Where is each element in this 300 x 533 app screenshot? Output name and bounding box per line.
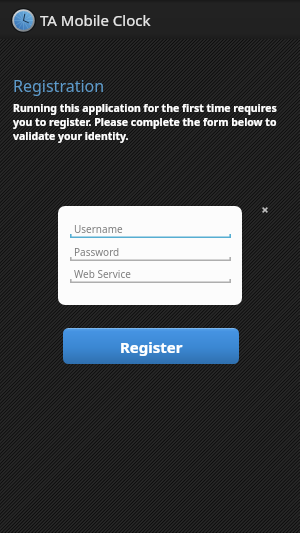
staticText: Username xyxy=(74,222,123,236)
button[interactable]: Username xyxy=(70,221,231,241)
staticText: Register xyxy=(120,337,183,357)
button[interactable]: Web Service xyxy=(70,266,231,286)
button[interactable]: Register xyxy=(63,328,239,364)
button[interactable]: Password xyxy=(70,244,231,264)
staticText: Registration xyxy=(13,75,105,97)
staticText: Password xyxy=(74,245,120,259)
staticText: TA Mobile Clock xyxy=(40,10,151,30)
staticText: Running this application for the first t… xyxy=(13,101,281,143)
button[interactable]: Close xyxy=(258,203,271,216)
button[interactable]: TA Mobile Clock icon xyxy=(0,0,300,39)
staticText: Web Service xyxy=(74,267,131,281)
other: TA Mobile Clock icon xyxy=(11,8,36,33)
